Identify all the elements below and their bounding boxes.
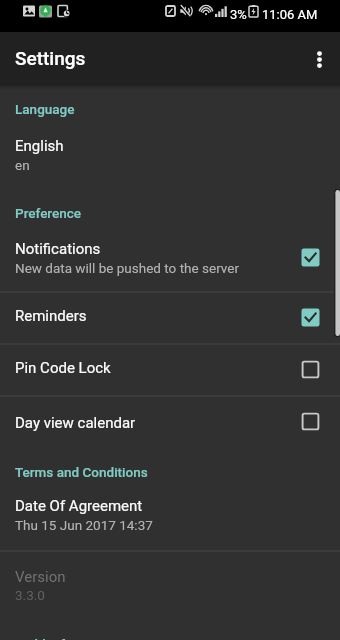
staticText: 3% — [230, 7, 247, 22]
staticText: English — [15, 137, 64, 155]
button[interactable]: Enabled — [301, 248, 320, 267]
button[interactable] — [0, 481, 340, 550]
staticText: Build Information — [15, 636, 120, 640]
button[interactable] — [0, 551, 340, 620]
staticText: Thu 15 Jun 2017 14:37 — [15, 517, 153, 533]
staticText: Date Of Agreement — [15, 497, 143, 515]
staticText: Reminders — [15, 307, 87, 325]
staticText: New data will be pushed to the server — [15, 260, 240, 276]
button[interactable] — [0, 122, 340, 187]
button[interactable] — [0, 344, 340, 397]
staticText: Notifications — [15, 240, 101, 258]
staticText: Preference — [15, 205, 82, 221]
staticText: Terms and Conditions — [15, 464, 148, 480]
button[interactable] — [0, 397, 340, 450]
button[interactable] — [0, 291, 340, 344]
staticText: Settings — [15, 47, 86, 69]
staticText: 11:06 AM — [262, 7, 318, 22]
button[interactable]: More options — [299, 39, 339, 79]
button[interactable]: Enabled — [301, 308, 320, 327]
staticText: en — [15, 157, 30, 173]
button[interactable]: Disabled — [301, 360, 320, 379]
button[interactable] — [0, 225, 340, 290]
staticText: Day view calendar — [15, 414, 136, 432]
staticText: 3.3.0 — [15, 587, 45, 603]
button[interactable]: Disabled — [301, 412, 320, 431]
staticText: Version — [15, 568, 66, 586]
staticText: Pin Code Lock — [15, 359, 111, 377]
staticText: Language — [15, 101, 75, 117]
